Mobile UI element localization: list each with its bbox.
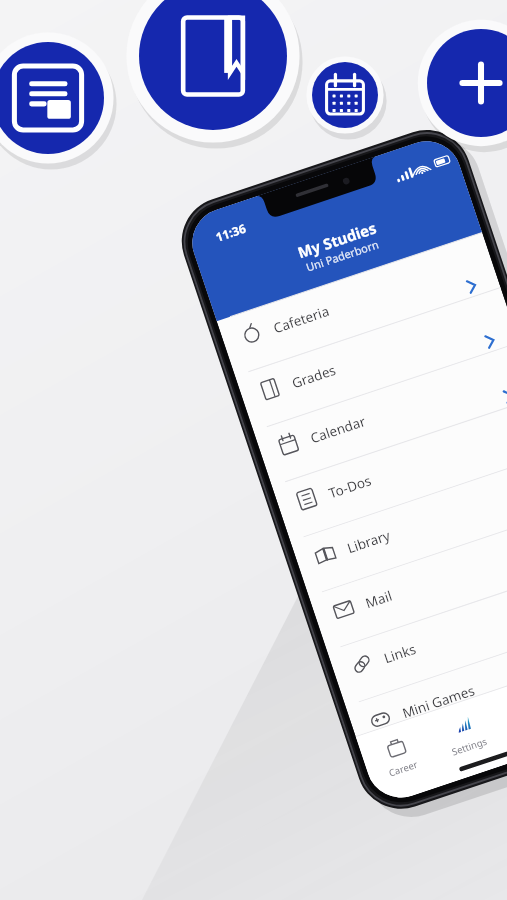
button[interactable]: News (0, 42, 104, 154)
button[interactable]: Add (427, 29, 507, 137)
button[interactable]: Calendar (312, 62, 378, 128)
button[interactable]: Journal (139, 0, 287, 130)
button[interactable]: News (0, 0, 507, 900)
